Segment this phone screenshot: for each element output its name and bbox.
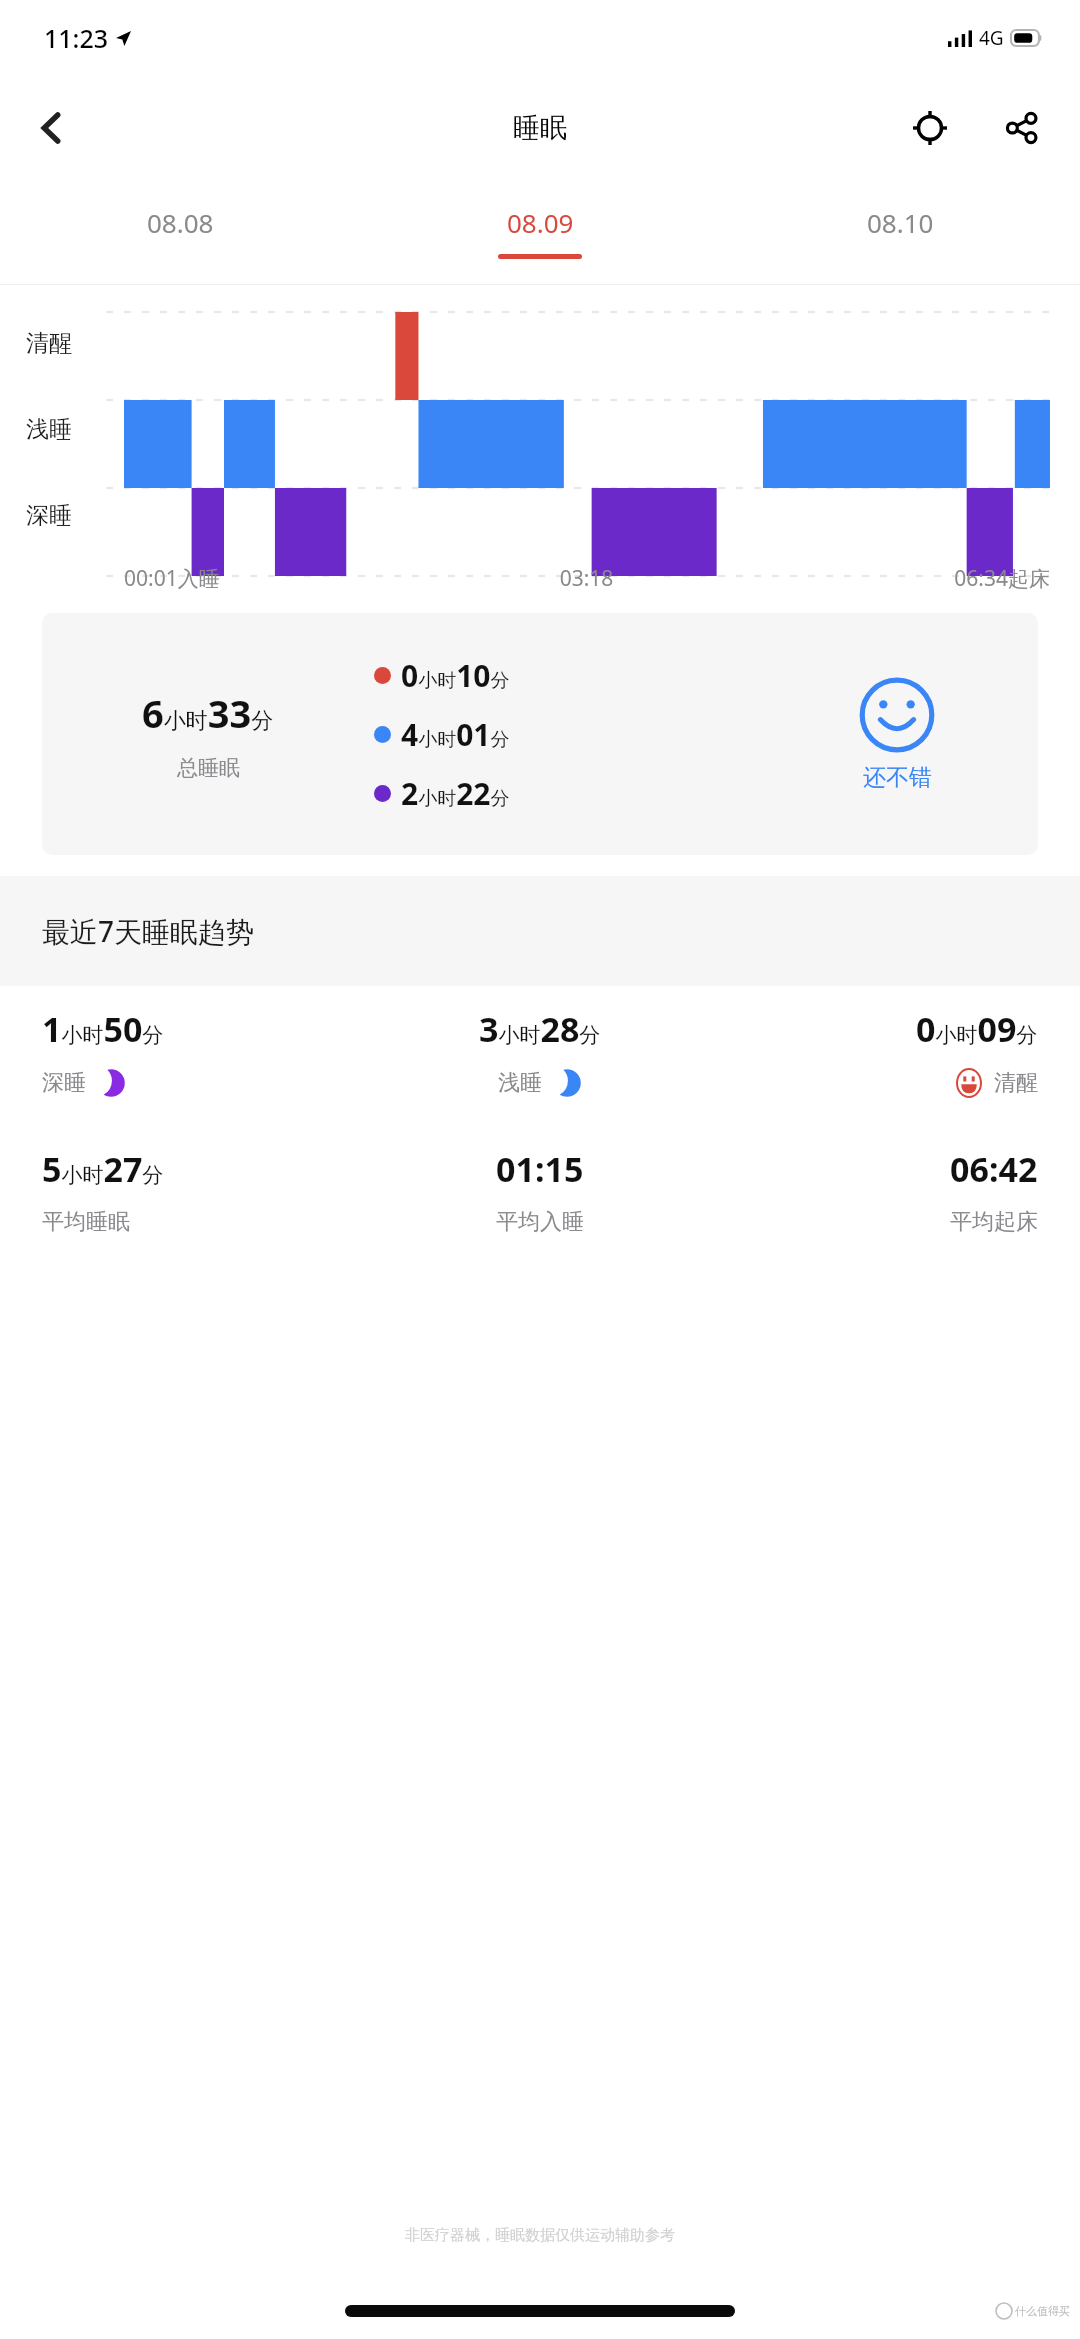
staticText: 00:01入睡 <box>124 564 432 593</box>
staticText: 清醒 <box>26 329 72 358</box>
staticText: 08.08 <box>147 205 214 240</box>
staticText: 什么值得买 <box>1015 2304 1070 2318</box>
staticText: 平均入睡 <box>496 1208 584 1236</box>
button[interactable]: 6小时33分 <box>42 613 1038 855</box>
staticText: 1小时50分 <box>42 1006 164 1052</box>
staticText: 0小时10分 <box>401 655 510 696</box>
staticText: 6小时33分 <box>142 687 274 739</box>
staticText: 平均起床 <box>950 1208 1038 1236</box>
button[interactable]: Back <box>22 98 82 158</box>
staticText: 08.10 <box>867 205 934 240</box>
button[interactable]: 01:15 <box>374 1146 706 1236</box>
staticText: 非医疗器械，睡眠数据仅供运动辅助参考 <box>0 2226 1080 2245</box>
button[interactable]: Target <box>898 96 962 160</box>
staticText: 还不错 <box>863 763 932 792</box>
staticText: 浅睡 <box>498 1069 542 1097</box>
staticText: 4小时01分 <box>401 714 510 755</box>
staticText: 4G <box>979 25 1004 51</box>
button[interactable]: 08.08 <box>0 180 360 284</box>
staticText: 总睡眠 <box>177 755 240 781</box>
staticText: 11:23 <box>44 21 109 55</box>
button[interactable]: 06:42 <box>706 1146 1038 1236</box>
staticText: 平均睡眠 <box>42 1208 130 1236</box>
staticText: 06:42 <box>950 1146 1038 1192</box>
staticText: 清醒 <box>994 1069 1038 1097</box>
staticText: 03:18 <box>432 564 741 593</box>
button[interactable]: 3小时28分 <box>374 1006 706 1098</box>
button[interactable]: 08.10 <box>720 180 1080 284</box>
button[interactable]: 1小时50分 <box>42 1006 374 1098</box>
staticText: 最近7天睡眠趋势 <box>42 912 255 950</box>
staticText: 深睡 <box>26 501 72 530</box>
staticText: 06:34起床 <box>741 564 1050 593</box>
staticText: 5小时27分 <box>42 1146 164 1192</box>
button[interactable]: 08.09 <box>360 180 720 284</box>
staticText: 2小时22分 <box>401 773 510 814</box>
staticText: 08.09 <box>507 205 574 240</box>
staticText: 睡眠 <box>513 111 567 145</box>
button[interactable]: 5小时27分 <box>42 1146 374 1236</box>
staticText: 01:15 <box>496 1146 584 1192</box>
button[interactable]: Share <box>990 96 1054 160</box>
staticText: 3小时28分 <box>479 1006 601 1052</box>
staticText: 0小时09分 <box>916 1006 1038 1052</box>
button[interactable]: 0小时09分 <box>706 1006 1038 1098</box>
staticText: 深睡 <box>42 1069 86 1097</box>
staticText: 浅睡 <box>26 415 72 444</box>
